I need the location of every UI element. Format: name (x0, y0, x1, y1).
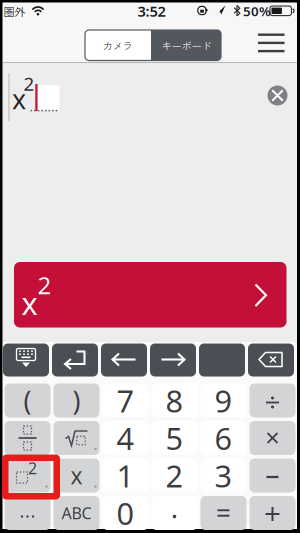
staticText: 圏外 (3, 3, 25, 19)
staticText: 1 (116, 455, 134, 496)
staticText: 3:52 (137, 1, 165, 21)
staticText: ABC (61, 502, 91, 524)
staticText: 2 (23, 71, 34, 96)
staticText: 6 (214, 418, 232, 458)
staticText: x (70, 460, 82, 490)
staticText: 2 (37, 269, 51, 301)
staticText: 2 (28, 457, 37, 479)
staticText: x (12, 81, 26, 117)
staticText: 7 (116, 380, 134, 421)
staticText: 5 (165, 418, 183, 458)
staticText: 9 (214, 380, 232, 421)
staticText: 0 (116, 493, 134, 533)
staticText: 4 (116, 418, 134, 458)
staticText: x (21, 283, 37, 323)
staticText: ) (72, 383, 80, 418)
staticText: ( (23, 383, 31, 418)
staticText: キーボード (161, 38, 211, 53)
staticText: カメラ (102, 38, 132, 53)
staticText: 2 (165, 455, 183, 496)
staticText: 50% (243, 2, 271, 20)
staticText: 8 (165, 380, 183, 421)
staticText: 3 (214, 455, 232, 496)
